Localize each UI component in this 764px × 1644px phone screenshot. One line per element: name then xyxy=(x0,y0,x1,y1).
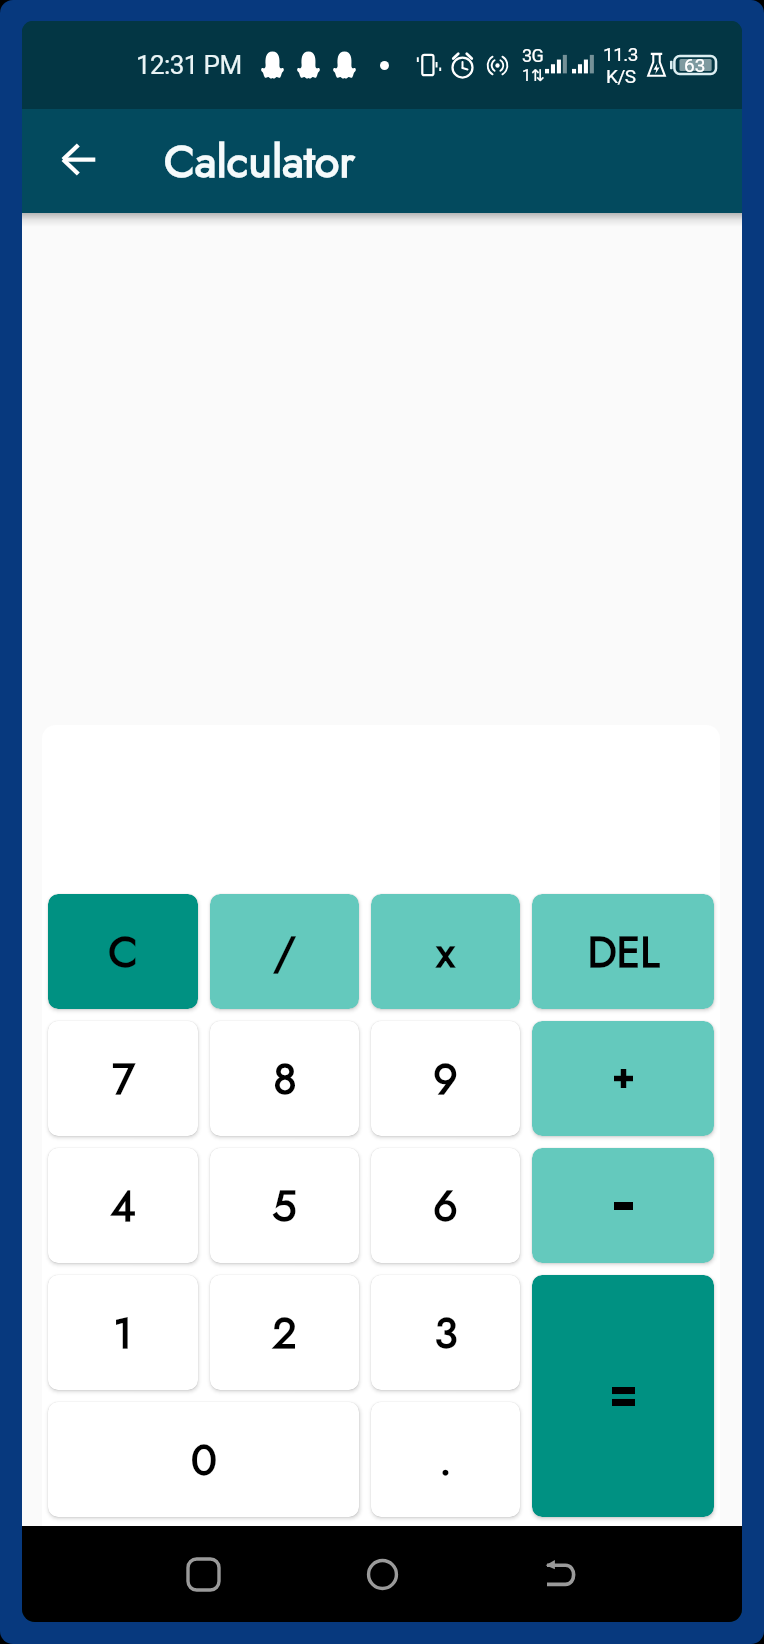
button[interactable]: x xyxy=(371,894,520,1009)
button[interactable]: 6 xyxy=(371,1148,520,1263)
button[interactable] xyxy=(532,1021,714,1136)
button[interactable]: 5 xyxy=(210,1148,359,1263)
staticText: 0 xyxy=(191,1429,217,1491)
button[interactable]: Back xyxy=(530,1543,592,1605)
button[interactable]: 1 xyxy=(48,1275,198,1390)
staticText: 8 xyxy=(273,1048,297,1110)
staticText: 4 xyxy=(110,1175,136,1237)
staticText: x xyxy=(436,921,455,983)
button[interactable]: / xyxy=(210,894,359,1009)
button[interactable]: 7 xyxy=(48,1021,198,1136)
staticText: . xyxy=(439,1429,452,1491)
staticText: 11.3 xyxy=(603,43,639,65)
staticText: 5 xyxy=(272,1175,297,1237)
staticText: 2 xyxy=(272,1302,297,1364)
staticText: 9 xyxy=(433,1048,458,1110)
button[interactable]: DEL xyxy=(532,894,714,1009)
staticText: Calculator xyxy=(164,129,355,194)
button[interactable]: 2 xyxy=(210,1275,359,1390)
button[interactable] xyxy=(532,1148,714,1263)
staticText: 1 xyxy=(113,1302,133,1364)
staticText: C xyxy=(108,921,138,983)
button[interactable]: Back xyxy=(44,126,114,196)
button[interactable]: Home xyxy=(351,1543,413,1605)
staticText: / xyxy=(273,921,296,983)
staticText: 1⇅ xyxy=(522,66,545,85)
staticText: 6 xyxy=(433,1175,458,1237)
staticText: 12:31 PM xyxy=(136,50,242,80)
button[interactable]: Recents xyxy=(172,1543,234,1605)
button[interactable]: 4 xyxy=(48,1148,198,1263)
button[interactable]: 3 xyxy=(371,1275,520,1390)
staticText: 7 xyxy=(112,1048,135,1110)
staticText: DEL xyxy=(587,921,660,983)
staticText: K/S xyxy=(606,65,636,87)
button[interactable]: 8 xyxy=(210,1021,359,1136)
button[interactable]: 0 xyxy=(48,1402,359,1517)
staticText: 63 xyxy=(684,54,706,76)
button[interactable] xyxy=(532,1275,714,1517)
button[interactable]: . xyxy=(371,1402,520,1517)
button[interactable]: C xyxy=(48,894,198,1009)
staticText: 3G xyxy=(522,45,544,66)
staticText: 3 xyxy=(434,1302,458,1364)
button[interactable]: 9 xyxy=(371,1021,520,1136)
